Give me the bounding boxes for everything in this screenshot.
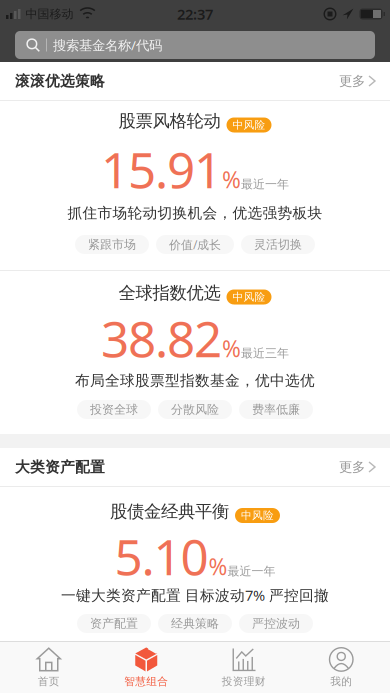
staticText: 全球指数优选 [118, 282, 220, 304]
button[interactable]: 全球指数优选 [0, 271, 390, 434]
button[interactable]: 智慧组合 [97, 642, 195, 693]
staticText: 严控波动 [252, 616, 300, 631]
button[interactable]: 更多 [339, 459, 375, 475]
staticText: 22:37 [177, 4, 213, 24]
staticText: % [222, 333, 241, 363]
staticText: 布局全球股票型指数基金，优中选优 [75, 371, 315, 389]
staticText: 最近一年 [227, 564, 275, 578]
staticText: % [208, 551, 227, 581]
staticText: 滚滚优选策略 [15, 72, 105, 90]
staticText: 大类资产配置 [15, 458, 105, 476]
staticText: 股债金经典平衡 [110, 501, 229, 522]
staticText: 股票风格轮动 [118, 110, 220, 132]
staticText: 更多 [339, 459, 365, 475]
staticText: 分散风险 [171, 402, 219, 417]
button[interactable]: 搜索基金名称/代码 [15, 31, 375, 59]
staticText: 中国移动 [25, 7, 73, 21]
staticText: 38.82 [101, 305, 222, 371]
button[interactable]: 更多 [339, 73, 375, 89]
staticText: 中风险 [241, 509, 274, 522]
staticText: 投资全球 [90, 402, 138, 417]
staticText: 智慧组合 [124, 675, 168, 688]
staticText: 投资理财 [222, 675, 266, 688]
staticText: 15.91 [101, 136, 222, 202]
staticText: 中风险 [232, 290, 265, 303]
button[interactable]: 股债金经典平衡 [0, 487, 390, 641]
staticText: 搜索基金名称/代码 [53, 36, 162, 54]
staticText: 首页 [38, 675, 60, 688]
staticText: 价值/成长 [169, 236, 221, 252]
staticText: 费率低廉 [252, 402, 300, 417]
staticText: 资产配置 [90, 616, 138, 631]
staticText: 紧跟市场 [88, 237, 136, 252]
staticText: 一键大类资产配置 目标波动7% 严控回撤 [61, 585, 329, 605]
staticText: 抓住市场轮动切换机会，优选强势板块 [67, 204, 322, 222]
staticText: 5.10 [114, 523, 208, 589]
staticText: 最近三年 [241, 346, 289, 360]
staticText: 我的 [330, 675, 352, 688]
staticText: 中风险 [232, 118, 265, 131]
button[interactable]: 首页 [0, 642, 97, 693]
staticText: 灵活切换 [254, 237, 302, 252]
staticText: % [222, 164, 241, 194]
staticText: 更多 [339, 73, 365, 89]
button[interactable]: 我的 [292, 642, 390, 693]
button[interactable]: 股票风格轮动 [0, 101, 390, 270]
button[interactable]: 投资理财 [195, 642, 292, 693]
staticText: 经典策略 [171, 616, 219, 631]
staticText: 最近一年 [241, 177, 289, 191]
